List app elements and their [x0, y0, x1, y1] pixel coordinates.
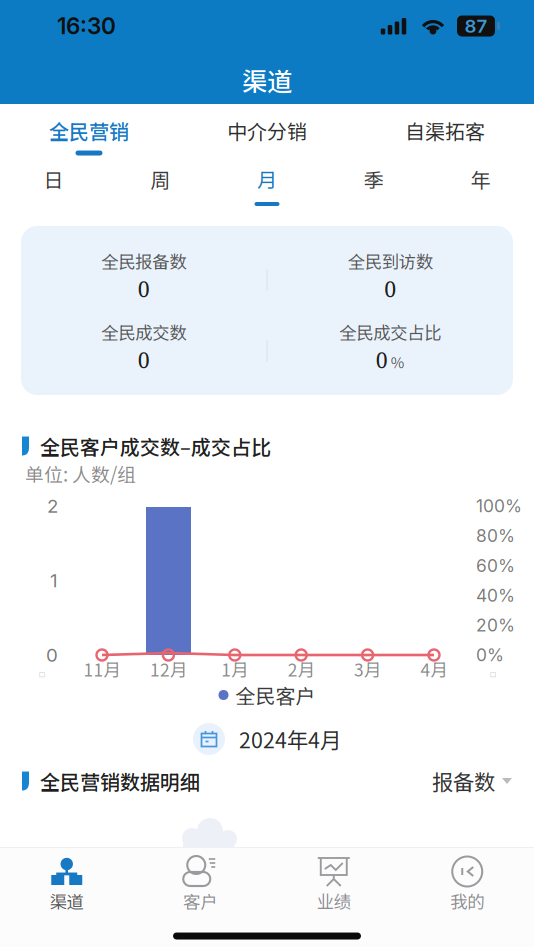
staticText: 0%: [476, 644, 504, 665]
staticText: 1: [50, 569, 58, 592]
staticText: 全民到访数: [348, 248, 433, 274]
staticText: 4月: [420, 656, 447, 682]
staticText: 客户: [183, 888, 217, 914]
staticText: 0: [376, 345, 388, 375]
staticText: ▫: [32, 659, 52, 688]
staticText: 全民营销数据明细: [40, 766, 200, 795]
button[interactable]: 报备数: [432, 766, 512, 796]
staticText: 全民客户成交数–成交占比: [40, 431, 271, 460]
staticText: 月: [257, 164, 277, 193]
staticText: 3月: [354, 656, 381, 682]
staticText: 40%: [476, 585, 515, 606]
staticText: 年: [471, 164, 491, 193]
staticText: 100%: [476, 495, 522, 516]
staticText: 全民营销: [49, 116, 129, 145]
staticText: ▫: [483, 659, 503, 688]
staticText: 11月: [83, 656, 120, 682]
staticText: 12月: [150, 656, 187, 682]
staticText: 0: [138, 345, 150, 375]
staticText: 60%: [476, 555, 515, 576]
staticText: 报备数: [432, 766, 495, 796]
staticText: 0: [46, 644, 58, 666]
button[interactable]: 2024年4月: [0, 723, 534, 755]
button[interactable]: 日: [0, 166, 107, 206]
button[interactable]: 周: [107, 166, 214, 206]
staticText: 全民报备数: [101, 248, 186, 274]
button[interactable]: 季: [320, 166, 427, 206]
staticText: 20%: [476, 615, 515, 636]
staticText: 全民成交占比: [339, 319, 441, 345]
button[interactable]: 中介分销: [178, 116, 356, 155]
staticText: 2024年4月: [239, 724, 341, 754]
staticText: 16:30: [57, 12, 116, 40]
button[interactable]: 渠道: [0, 848, 133, 916]
staticText: 单位: 人数/组: [25, 460, 136, 487]
staticText: 80%: [476, 525, 515, 546]
staticText: 业绩: [317, 888, 351, 914]
staticText: 0: [138, 274, 150, 304]
staticText: 2: [47, 495, 58, 517]
button[interactable]: 全民营销: [0, 116, 178, 155]
staticText: 自渠拓客: [405, 116, 485, 145]
staticText: 87: [464, 15, 487, 37]
staticText: %: [391, 351, 405, 372]
staticText: 季: [364, 164, 384, 193]
button[interactable]: 月: [214, 166, 320, 206]
staticText: 渠道: [242, 62, 292, 98]
staticText: 全民客户: [235, 680, 315, 709]
staticText: 日: [43, 164, 63, 193]
staticText: 中介分销: [227, 116, 307, 145]
button[interactable]: 我的: [400, 848, 534, 916]
staticText: 全民成交数: [101, 319, 186, 345]
staticText: 1月: [221, 656, 248, 682]
button[interactable]: 自渠拓客: [356, 116, 534, 155]
button[interactable]: 客户: [133, 848, 267, 916]
button[interactable]: 业绩: [267, 848, 400, 916]
staticText: 渠道: [50, 888, 84, 914]
button[interactable]: 年: [427, 166, 534, 206]
staticText: 周: [150, 164, 170, 193]
staticText: 0: [384, 274, 396, 304]
staticText: 2月: [288, 656, 315, 682]
staticText: 我的: [450, 888, 484, 914]
